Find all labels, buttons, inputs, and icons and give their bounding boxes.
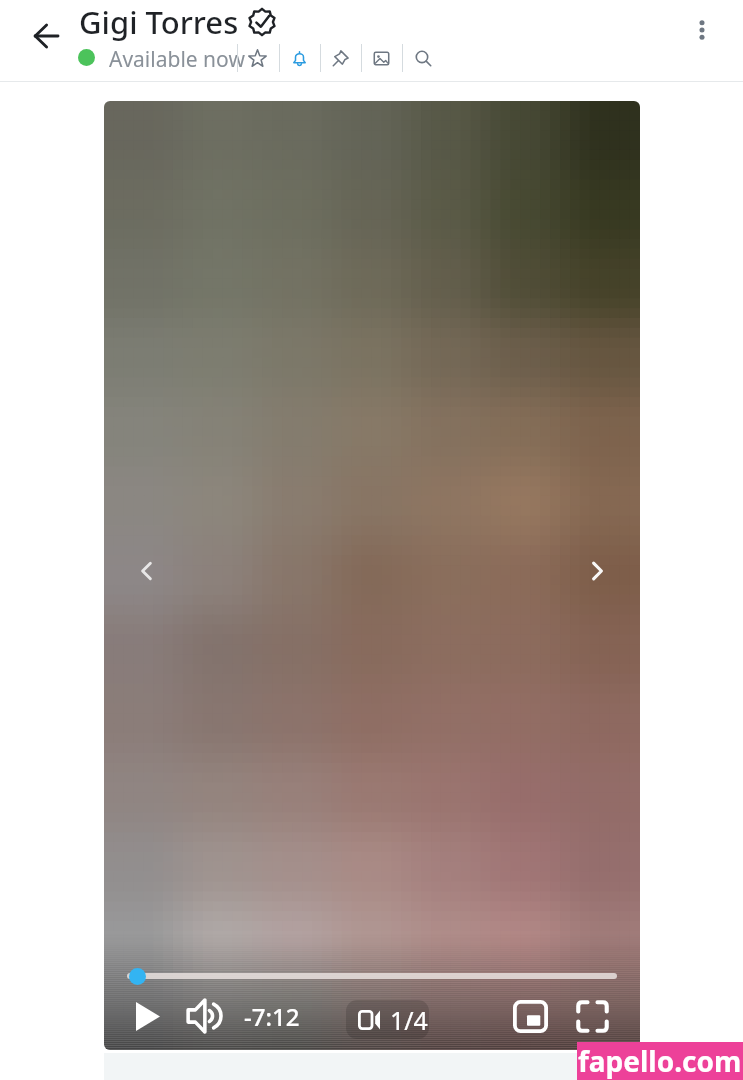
button[interactable]: Seek <box>118 960 626 992</box>
button[interactable]: Mute <box>177 987 235 1045</box>
button[interactable]: Back <box>22 12 70 60</box>
button[interactable]: Gallery <box>362 38 401 78</box>
button[interactable]: Picture in picture <box>501 987 559 1045</box>
button[interactable]: Next <box>572 546 622 596</box>
button[interactable]: Videos <box>346 1000 429 1039</box>
button[interactable]: Previous <box>122 546 172 596</box>
staticText: Gigi Torres <box>79 1 239 43</box>
button[interactable]: Notifications <box>280 38 319 78</box>
button[interactable]: Favorite <box>238 38 277 78</box>
button[interactable]: Search <box>404 38 443 78</box>
button[interactable]: Pin <box>321 38 360 78</box>
button[interactable]: fapello.com <box>577 1042 743 1080</box>
staticText: fapello.com <box>578 1042 742 1080</box>
staticText: -7:12 <box>244 1000 300 1033</box>
button[interactable]: Fullscreen <box>563 987 621 1045</box>
button[interactable]: Play <box>119 987 177 1045</box>
button[interactable]: More options <box>680 8 724 52</box>
staticText: Available now <box>109 45 245 71</box>
staticText: 1/4 <box>390 1003 428 1037</box>
